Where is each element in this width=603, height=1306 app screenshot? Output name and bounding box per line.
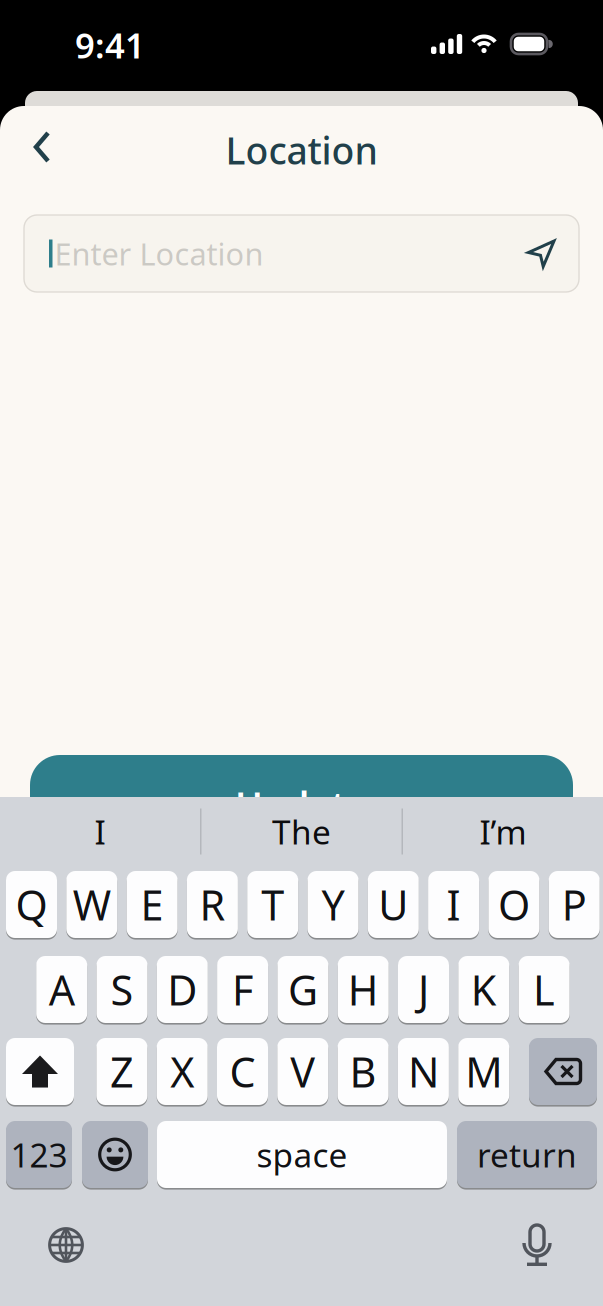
- staticText: return: [477, 1132, 577, 1177]
- staticText: 123: [10, 1132, 67, 1177]
- button[interactable]: R: [187, 871, 238, 938]
- staticText: R: [199, 877, 225, 932]
- button[interactable]: D: [157, 956, 208, 1023]
- staticText: W: [73, 877, 111, 932]
- button[interactable]: Z: [96, 1038, 147, 1105]
- staticText: V: [290, 1044, 315, 1099]
- button[interactable]: L: [519, 956, 570, 1023]
- button[interactable]: J: [398, 956, 449, 1023]
- button[interactable]: Shift: [6, 1038, 74, 1105]
- button[interactable]: W: [66, 871, 117, 938]
- button[interactable]: O: [488, 871, 539, 938]
- staticText: The: [272, 809, 331, 854]
- staticText: H: [348, 962, 379, 1017]
- staticText: K: [471, 962, 497, 1017]
- button[interactable]: I: [0, 797, 200, 866]
- staticText: L: [533, 962, 555, 1017]
- staticText: Enter Location: [54, 233, 263, 274]
- button[interactable]: return: [457, 1121, 597, 1188]
- button[interactable]: V: [277, 1038, 328, 1105]
- staticText: S: [110, 962, 133, 1017]
- staticText: Location: [225, 125, 377, 175]
- button[interactable]: E: [127, 871, 178, 938]
- staticText: O: [498, 877, 530, 932]
- button[interactable]: H: [338, 956, 389, 1023]
- staticText: E: [141, 877, 164, 932]
- staticText: U: [378, 877, 408, 932]
- staticText: C: [229, 1044, 255, 1099]
- staticText: Y: [321, 877, 344, 932]
- button[interactable]: The: [201, 797, 401, 866]
- button[interactable]: P: [549, 871, 600, 938]
- button[interactable]: A: [36, 956, 87, 1023]
- staticText: F: [232, 962, 253, 1017]
- button[interactable]: X: [157, 1038, 208, 1105]
- button[interactable]: F: [217, 956, 268, 1023]
- button[interactable]: I: [428, 871, 479, 938]
- button[interactable]: Next keyboard: [48, 1227, 84, 1263]
- staticText: Q: [15, 877, 47, 932]
- staticText: J: [418, 962, 429, 1017]
- button[interactable]: M: [458, 1038, 509, 1105]
- staticText: Update: [235, 780, 368, 830]
- staticText: B: [350, 1044, 377, 1099]
- staticText: X: [170, 1044, 194, 1099]
- button[interactable]: G: [277, 956, 328, 1023]
- staticText: I: [447, 877, 461, 932]
- button[interactable]: Q: [6, 871, 57, 938]
- button[interactable]: space: [157, 1121, 447, 1188]
- staticText: space: [256, 1132, 347, 1177]
- button[interactable]: B: [338, 1038, 389, 1105]
- button[interactable]: N: [398, 1038, 449, 1105]
- staticText: A: [49, 962, 75, 1017]
- button[interactable]: C: [217, 1038, 268, 1105]
- staticText: I: [94, 809, 105, 854]
- button[interactable]: Back: [21, 118, 62, 175]
- staticText: N: [408, 1044, 439, 1099]
- staticText: M: [465, 1044, 502, 1099]
- staticText: 9:41: [75, 22, 145, 68]
- button[interactable]: I’m: [403, 797, 603, 866]
- button[interactable]: K: [458, 956, 509, 1023]
- button[interactable]: T: [247, 871, 298, 938]
- button[interactable]: Y: [307, 871, 358, 938]
- button[interactable]: U: [368, 871, 419, 938]
- button[interactable]: Dictate: [522, 1224, 552, 1266]
- button[interactable]: [30, 755, 573, 851]
- button[interactable]: S: [96, 956, 147, 1023]
- button[interactable]: 123: [6, 1121, 72, 1188]
- staticText: D: [167, 962, 197, 1017]
- button[interactable]: Emoji: [82, 1121, 148, 1188]
- button[interactable]: Delete: [529, 1038, 597, 1105]
- staticText: I’m: [479, 809, 526, 854]
- staticText: T: [261, 877, 284, 932]
- staticText: G: [288, 962, 318, 1017]
- button[interactable]: Use current location: [527, 239, 555, 267]
- staticText: Z: [110, 1044, 134, 1099]
- staticText: P: [562, 877, 587, 932]
